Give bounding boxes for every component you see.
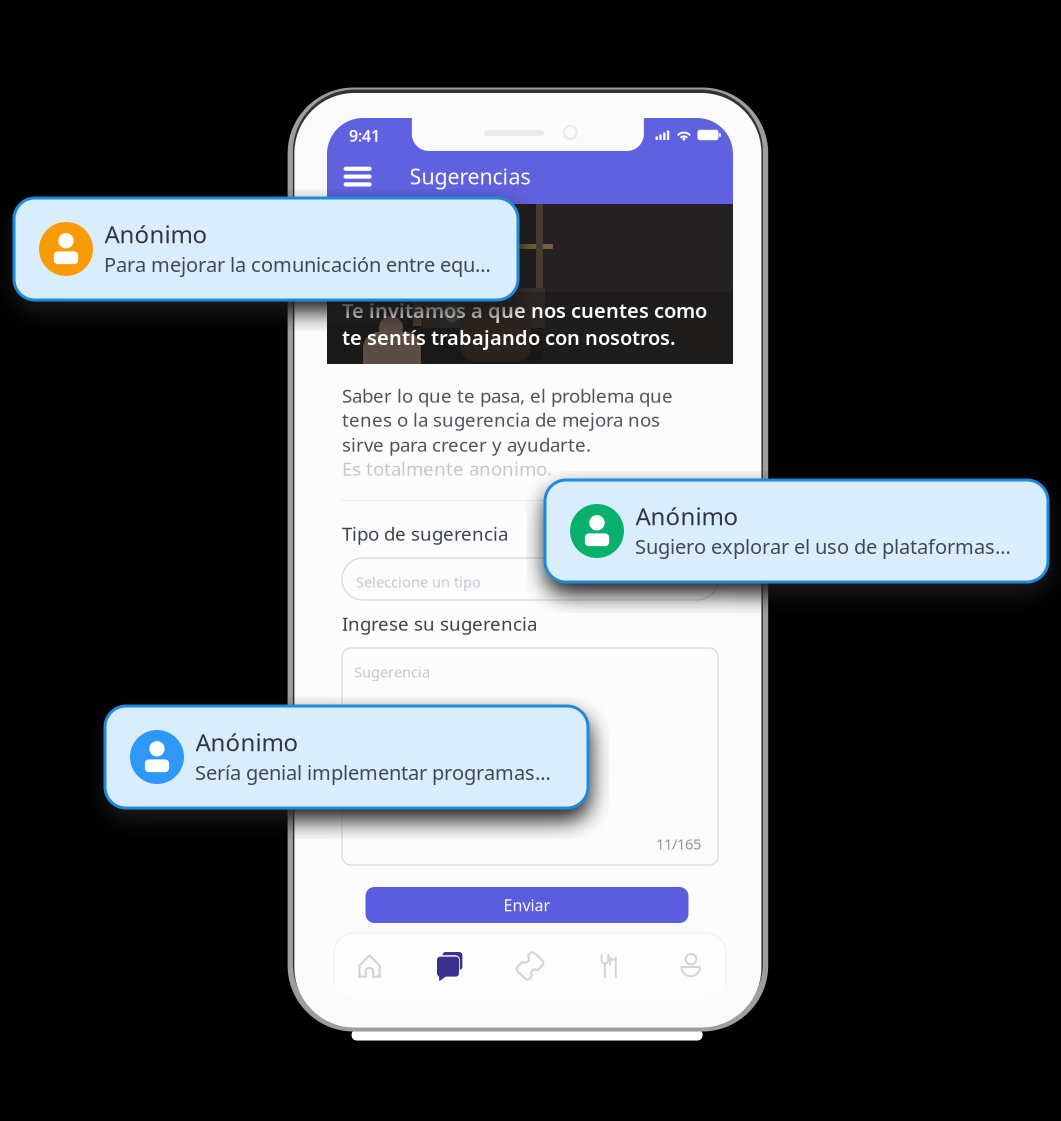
staticText: Saber lo que te pasa, el problema que xyxy=(342,383,673,408)
button[interactable]: Beneficios xyxy=(506,945,554,987)
staticText: Seleccione un tipo xyxy=(356,572,481,591)
button[interactable]: Enviar xyxy=(365,887,688,923)
staticText: Sugiero explorar el uso de plataformas… xyxy=(635,533,1011,560)
staticText: Para mejorar la comunicación entre equ… xyxy=(104,251,491,278)
staticText: te sentís trabajando con nosotros. xyxy=(342,324,676,351)
staticText: tenes o la sugerencia de mejora nos xyxy=(342,407,660,432)
staticText: Sería genial implementar programas… xyxy=(195,759,551,786)
staticText: Te invitamos a que nos cuentes como xyxy=(342,297,707,324)
button[interactable]: Sugerencia xyxy=(342,648,718,865)
staticText: Anónimo xyxy=(104,218,207,250)
staticText: Sugerencias xyxy=(410,162,531,190)
staticText: Tipo de sugerencia xyxy=(342,521,508,546)
button[interactable]: Perfil xyxy=(667,945,715,987)
staticText: Ingrese su sugerencia xyxy=(342,611,537,636)
button[interactable]: Sugerencias xyxy=(426,945,474,987)
button[interactable]: Menu xyxy=(337,161,379,193)
button[interactable]: Comedor xyxy=(585,945,633,987)
staticText: Anónimo xyxy=(195,726,298,758)
staticText: 9:41 xyxy=(349,125,380,146)
staticText: Sugerencia xyxy=(354,662,430,681)
staticText: Enviar xyxy=(503,894,550,916)
staticText: sirve para crecer y ayudarte. xyxy=(342,432,591,457)
button[interactable]: Inicio xyxy=(345,945,393,987)
staticText: Anónimo xyxy=(635,500,738,532)
staticText: 11/165 xyxy=(656,834,701,853)
staticText: Es totalmente anonimo. xyxy=(342,456,552,481)
button[interactable]: Seleccione un tipo xyxy=(342,558,718,600)
